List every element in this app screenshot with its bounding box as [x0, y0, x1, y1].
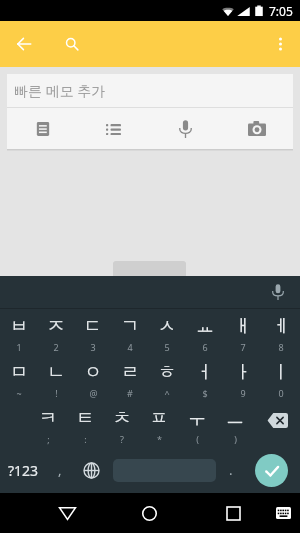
staticText: 5 — [164, 341, 170, 353]
button[interactable]: ㅐ — [224, 309, 262, 355]
button[interactable]: Voice — [149, 108, 221, 149]
button[interactable]: Change language — [72, 447, 111, 493]
staticText: $ — [202, 387, 208, 399]
button[interactable]: Note — [7, 108, 78, 149]
button[interactable]: ㅓ — [186, 355, 224, 401]
staticText: ㅂ — [10, 315, 28, 338]
staticText: 7 — [240, 341, 246, 353]
staticText: ㅌ — [76, 407, 94, 430]
button[interactable]: ㅜ — [178, 401, 216, 447]
staticText: ) — [234, 433, 237, 445]
button[interactable]: Enter — [255, 454, 288, 487]
staticText: ㅊ — [113, 407, 131, 430]
button[interactable]: ㄱ — [111, 309, 148, 355]
button[interactable]: ㅏ — [224, 355, 262, 401]
staticText: 빠른 메모 추가 — [14, 81, 106, 100]
staticText: ? — [120, 433, 124, 445]
staticText: ㅇ — [84, 361, 102, 384]
staticText: ㅣ — [272, 361, 290, 384]
staticText: ㅡ — [226, 407, 244, 430]
button[interactable]: Recents — [218, 498, 248, 528]
staticText: * — [157, 433, 162, 445]
staticText: 7:05 — [269, 3, 293, 19]
staticText: ?123 — [8, 461, 39, 480]
staticText: . — [229, 461, 233, 479]
button[interactable]: ㅂ — [0, 309, 37, 355]
button[interactable]: Voice input — [264, 278, 292, 306]
button[interactable]: ㄷ — [74, 309, 111, 355]
button[interactable]: Camera — [221, 108, 293, 149]
staticText: ㅁ — [10, 361, 28, 384]
button[interactable]: ㅌ — [66, 401, 103, 447]
button[interactable]: Back — [52, 498, 82, 528]
staticText: ㅅ — [158, 315, 176, 338]
staticText: ㄹ — [121, 361, 139, 384]
staticText: ㅔ — [272, 315, 290, 338]
button[interactable]: Hide keyboard — [269, 499, 297, 527]
button[interactable]: ㄴ — [37, 355, 74, 401]
button[interactable]: , — [47, 447, 72, 493]
staticText: 1 — [16, 341, 22, 353]
staticText: ㅋ — [39, 407, 57, 430]
staticText: ( — [196, 433, 199, 445]
button[interactable]: ㅅ — [148, 309, 186, 355]
button[interactable]: ㅈ — [37, 309, 74, 355]
button[interactable]: ㅔ — [262, 309, 300, 355]
staticText: 2 — [53, 341, 59, 353]
staticText: ㅎ — [158, 361, 176, 384]
staticText: ㅈ — [47, 315, 65, 338]
staticText: , — [58, 461, 62, 479]
staticText: ㄴ — [47, 361, 65, 384]
staticText: ^ — [164, 387, 170, 399]
button[interactable]: ㅊ — [103, 401, 140, 447]
button[interactable]: ㅇ — [74, 355, 111, 401]
button[interactable]: ㅎ — [148, 355, 186, 401]
button[interactable]: ㅣ — [262, 355, 300, 401]
staticText: ㅓ — [196, 361, 214, 384]
button[interactable]: . — [218, 447, 243, 493]
staticText: 9 — [240, 387, 246, 399]
staticText: ㅍ — [150, 407, 168, 430]
button[interactable]: List — [78, 108, 149, 149]
staticText: # — [127, 387, 133, 399]
button[interactable]: Backspace — [254, 401, 300, 447]
button[interactable]: More options — [264, 28, 296, 60]
button[interactable]: ㅁ — [0, 355, 37, 401]
staticText: 8 — [278, 341, 284, 353]
staticText: 4 — [127, 341, 133, 353]
button[interactable]: Search — [54, 26, 90, 62]
staticText: : — [84, 433, 87, 445]
staticText: 3 — [90, 341, 96, 353]
button[interactable]: ㅍ — [140, 401, 178, 447]
button[interactable]: ㅋ — [29, 401, 66, 447]
staticText: 0 — [278, 387, 284, 399]
staticText: ! — [55, 387, 58, 399]
button[interactable]: Back — [6, 26, 42, 62]
staticText: ㅛ — [196, 315, 214, 338]
staticText: ㅏ — [234, 361, 252, 384]
staticText: ; — [47, 433, 50, 445]
button[interactable]: ㅛ — [186, 309, 224, 355]
staticText: ㅐ — [234, 315, 252, 338]
button[interactable]: ?123 — [0, 447, 47, 493]
button[interactable]: ㅡ — [216, 401, 254, 447]
staticText: @ — [89, 387, 98, 399]
button[interactable]: Home — [134, 498, 164, 528]
staticText: 6 — [202, 341, 208, 353]
staticText: ㄱ — [121, 315, 139, 338]
staticText: ㄷ — [84, 315, 102, 338]
staticText: ~ — [16, 387, 22, 399]
staticText: ㅜ — [188, 407, 206, 430]
button[interactable]: ㄹ — [111, 355, 148, 401]
